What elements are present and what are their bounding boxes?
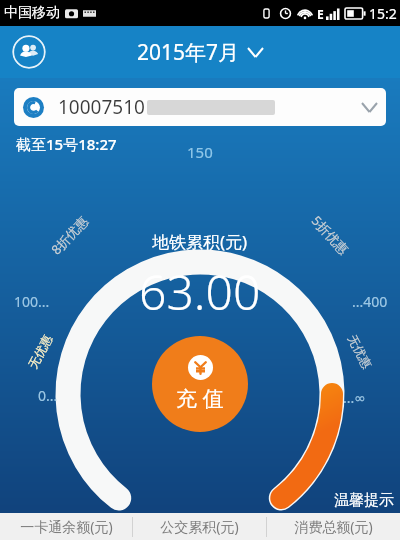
- staticText: 截至15号18:27: [16, 134, 117, 154]
- staticText: 无优惠: [25, 332, 55, 371]
- button[interactable]: 10007510: [14, 88, 386, 126]
- staticText: 2015年7月: [137, 38, 240, 67]
- staticText: 63.00: [139, 259, 261, 324]
- staticText: 10007510: [58, 94, 145, 120]
- staticText: 中国移动: [4, 4, 60, 22]
- staticText: 一卡通余额(元): [20, 517, 113, 536]
- staticText: 充 值: [176, 384, 224, 413]
- button[interactable]: 2015年7月: [137, 38, 263, 67]
- staticText: 8折优惠: [47, 212, 92, 258]
- button[interactable]: Accounts: [12, 35, 46, 69]
- staticText: ...∞: [343, 388, 366, 407]
- staticText: 15:2: [369, 4, 397, 23]
- staticText: 无优惠: [345, 332, 375, 371]
- staticText: 地铁累积(元): [152, 230, 248, 253]
- staticText: E: [317, 6, 324, 22]
- button[interactable]: 一卡通余额(元): [0, 517, 132, 536]
- staticText: ...400: [352, 292, 388, 311]
- staticText: 消费总额(元): [294, 517, 373, 536]
- staticText: 0...: [38, 386, 58, 405]
- staticText: 温馨提示: [334, 491, 394, 510]
- staticText: 150: [187, 142, 213, 162]
- staticText: 100...: [14, 292, 50, 311]
- button[interactable]: 充 值: [152, 336, 248, 432]
- staticText: 5折优惠: [308, 212, 353, 258]
- button[interactable]: 公交累积(元): [133, 517, 266, 536]
- button[interactable]: 消费总额(元): [267, 517, 400, 536]
- staticText: 公交累积(元): [160, 517, 239, 536]
